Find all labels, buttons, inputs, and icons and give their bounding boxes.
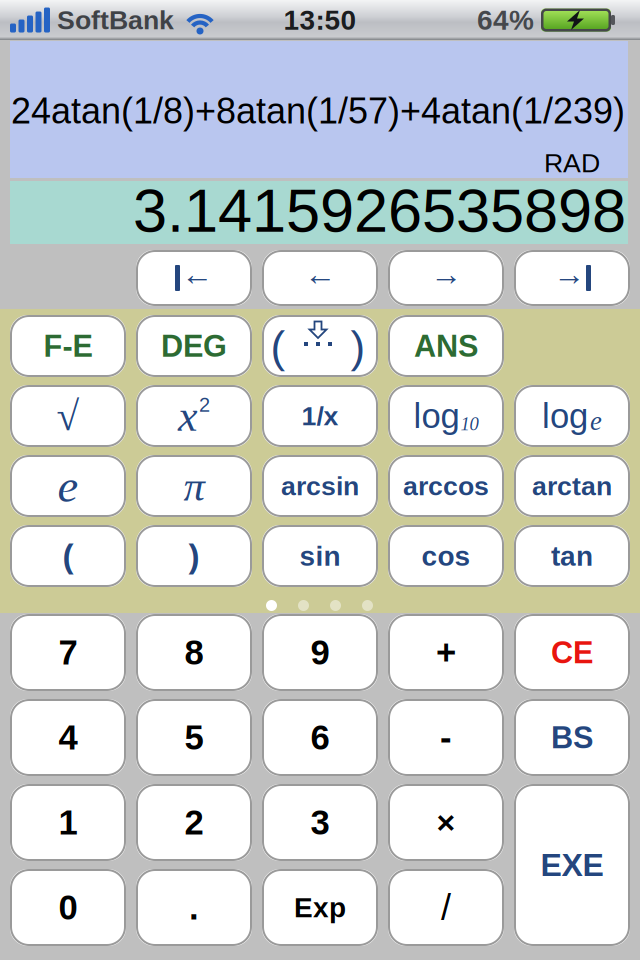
staticText: 3 [310, 803, 329, 842]
button[interactable]: arctan [514, 455, 630, 517]
staticText: - [440, 718, 452, 757]
button[interactable]: 8 [136, 614, 252, 691]
button[interactable]: + [388, 614, 504, 691]
staticText: F-E [43, 329, 92, 363]
button[interactable]: DEG [136, 315, 252, 377]
button[interactable]: × [388, 784, 504, 861]
staticText: 2 [199, 394, 210, 416]
staticText: → [430, 256, 462, 292]
staticText: 3.1415926535898 [133, 176, 626, 245]
button[interactable]: cos [388, 525, 504, 587]
button[interactable]: / [388, 869, 504, 946]
staticText: BS [551, 720, 593, 755]
button[interactable]: CE [514, 614, 630, 691]
staticText: + [436, 633, 456, 672]
button[interactable]: 2 [136, 784, 252, 861]
staticText: DEG [161, 329, 227, 363]
button[interactable]: . [136, 869, 252, 946]
staticText: / [441, 887, 451, 928]
button[interactable]: ( [10, 525, 126, 587]
staticText: Exp [294, 892, 346, 923]
button[interactable]: Move cursor to start [136, 250, 252, 306]
staticText: 24atan(1/8)+8atan(1/57)+4atan(1/239) [11, 91, 625, 131]
button[interactable]: ) [136, 525, 252, 587]
button[interactable]: 6 [262, 699, 378, 776]
button[interactable]: Exp [262, 869, 378, 946]
staticText: SoftBank [57, 5, 174, 35]
button[interactable]: 1/x [262, 385, 378, 447]
button[interactable]: EXE [514, 784, 630, 946]
button[interactable]: √ [10, 385, 126, 447]
staticText: ) [350, 322, 365, 372]
button[interactable]: 1 [10, 784, 126, 861]
staticText: × [436, 805, 455, 840]
staticText: x [178, 392, 198, 440]
button[interactable]: log [514, 385, 630, 447]
button[interactable]: 5 [136, 699, 252, 776]
staticText: sin [299, 540, 340, 572]
staticText: e [590, 406, 602, 436]
button[interactable]: tan [514, 525, 630, 587]
staticText: ( [62, 537, 73, 575]
staticText: → [553, 256, 585, 292]
staticText: CE [551, 635, 593, 670]
button[interactable]: log [388, 385, 504, 447]
staticText: arccos [403, 471, 489, 501]
staticText: log [542, 397, 588, 435]
staticText: 13:50 [283, 4, 356, 36]
staticText: EXE [540, 847, 603, 883]
button[interactable]: x [136, 385, 252, 447]
staticText: cos [421, 540, 470, 572]
staticText: ( [270, 322, 285, 372]
staticText: 4 [58, 718, 77, 757]
staticText: ← [304, 256, 336, 292]
staticText: ANS [414, 329, 478, 363]
staticText: 7 [58, 633, 77, 672]
button[interactable]: π [136, 455, 252, 517]
staticText: log [413, 397, 459, 435]
button[interactable]: e [10, 455, 126, 517]
staticText: 6 [310, 718, 329, 757]
button[interactable]: Move cursor to end [514, 250, 630, 306]
staticText: 5 [184, 718, 203, 757]
staticText: 8 [184, 633, 203, 672]
button[interactable]: Move cursor left [262, 250, 378, 306]
staticText: ← [181, 256, 213, 292]
staticText: 1/x [301, 401, 338, 431]
button[interactable]: ANS [388, 315, 504, 377]
staticText: 0 [58, 888, 77, 927]
staticText: . [189, 888, 199, 927]
button[interactable]: Move cursor right [388, 250, 504, 306]
staticText: 10 [460, 414, 478, 434]
staticText: RAD [544, 148, 600, 178]
button[interactable]: Insert parentheses [262, 315, 378, 377]
staticText: 1 [58, 803, 77, 842]
staticText: arcsin [281, 471, 359, 501]
button[interactable]: - [388, 699, 504, 776]
staticText: π [183, 462, 204, 510]
button[interactable]: 7 [10, 614, 126, 691]
staticText: 64% [477, 4, 534, 36]
staticText: 2 [184, 803, 203, 842]
button[interactable]: arcsin [262, 455, 378, 517]
staticText: ) [188, 537, 199, 575]
button[interactable]: 0 [10, 869, 126, 946]
staticText: 9 [310, 633, 329, 672]
button[interactable]: 9 [262, 614, 378, 691]
staticText: arctan [532, 471, 612, 501]
staticText: e [57, 460, 78, 512]
button[interactable]: 4 [10, 699, 126, 776]
staticText: √ [56, 393, 79, 439]
button[interactable]: arccos [388, 455, 504, 517]
button[interactable]: 3 [262, 784, 378, 861]
staticText: tan [551, 540, 593, 572]
button[interactable]: sin [262, 525, 378, 587]
button[interactable]: F-E [10, 315, 126, 377]
button[interactable]: BS [514, 699, 630, 776]
